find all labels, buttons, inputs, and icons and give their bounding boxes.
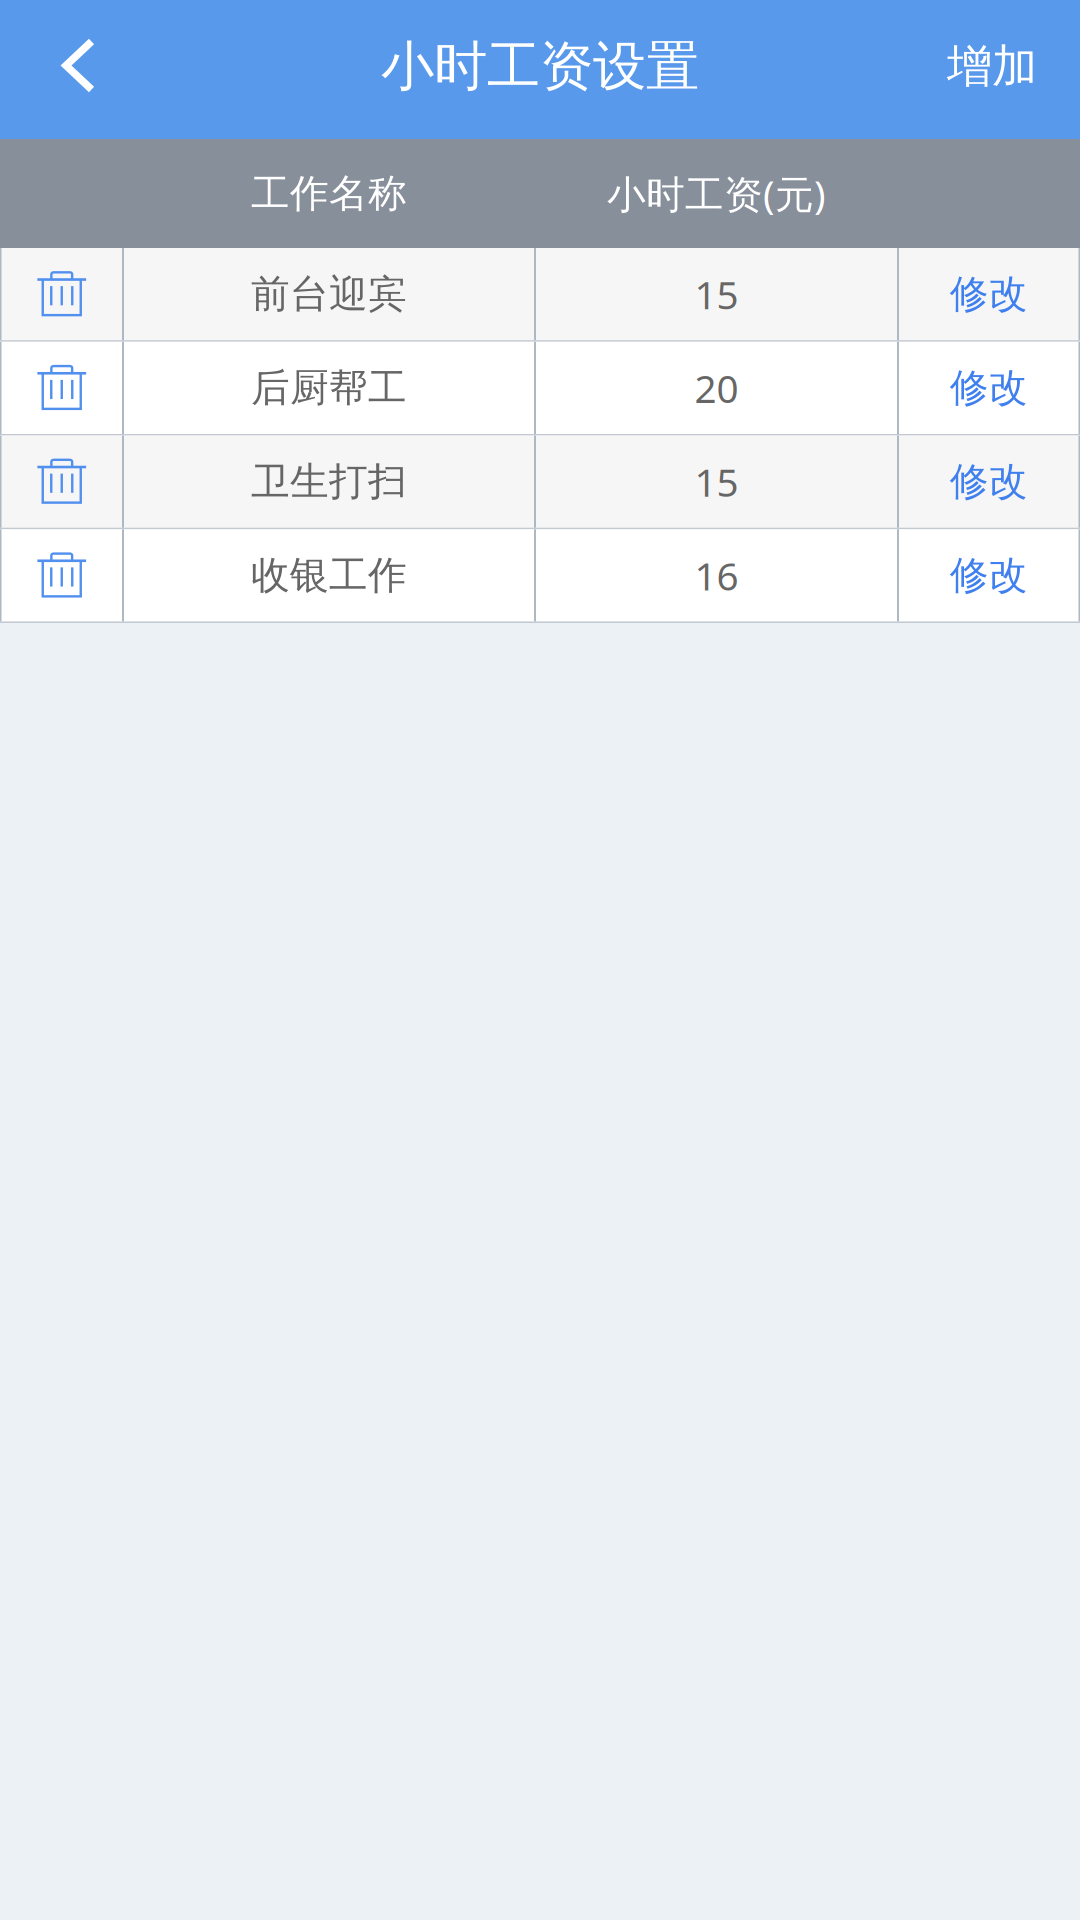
button[interactable]: 修改: [899, 248, 1078, 340]
button[interactable]: 返回: [0, 0, 157, 139]
staticText: 15: [694, 456, 738, 507]
staticText: 修改: [950, 364, 1028, 412]
staticText: 卫生打扫: [251, 458, 407, 505]
button[interactable]: 修改: [899, 342, 1078, 434]
button[interactable]: 增加: [947, 0, 1080, 139]
staticText: 小时工资设置: [381, 34, 699, 99]
staticText: 后厨帮工: [251, 364, 407, 412]
staticText: 20: [694, 362, 738, 413]
button[interactable]: 修改: [899, 529, 1078, 621]
button[interactable]: 删除卫生打扫: [1, 435, 122, 528]
button[interactable]: 删除前台迎宾: [1, 248, 122, 340]
button[interactable]: 修改: [899, 435, 1078, 528]
staticText: 增加: [947, 39, 1037, 94]
staticText: 前台迎宾: [251, 270, 407, 318]
staticText: 15: [694, 268, 738, 320]
staticText: 修改: [950, 270, 1028, 318]
staticText: 收银工作: [251, 552, 407, 599]
staticText: 小时工资(元): [607, 168, 826, 219]
staticText: 修改: [950, 458, 1028, 505]
button[interactable]: 删除收银工作: [1, 529, 122, 621]
button[interactable]: 删除后厨帮工: [1, 342, 122, 434]
staticText: 修改: [950, 552, 1028, 599]
staticText: 工作名称: [251, 170, 407, 217]
staticText: 16: [694, 550, 738, 601]
